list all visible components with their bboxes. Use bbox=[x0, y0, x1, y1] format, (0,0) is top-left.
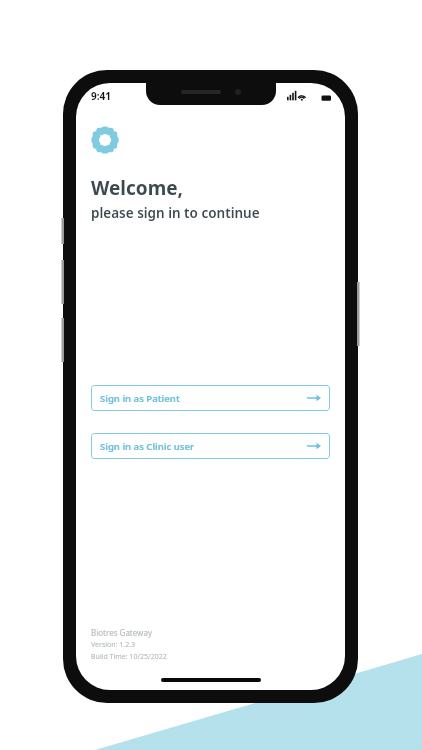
staticText: Build Time: 10/25/2022 bbox=[91, 652, 167, 662]
staticText: Sign in as Patient bbox=[100, 392, 307, 405]
staticText: Biotres Gateway bbox=[91, 627, 152, 638]
other: Continue bbox=[307, 393, 321, 403]
other: Continue bbox=[307, 441, 321, 451]
staticText: please sign in to continue bbox=[91, 204, 260, 222]
staticText: Welcome, bbox=[91, 175, 183, 201]
staticText: Sign in as Clinic user bbox=[100, 440, 307, 453]
button[interactable]: Sign in as Clinic user bbox=[91, 433, 330, 459]
staticText: Version: 1.2.3 bbox=[91, 640, 136, 650]
staticText: 9:41 bbox=[91, 89, 111, 103]
button[interactable]: Sign in as Patient bbox=[91, 385, 330, 411]
